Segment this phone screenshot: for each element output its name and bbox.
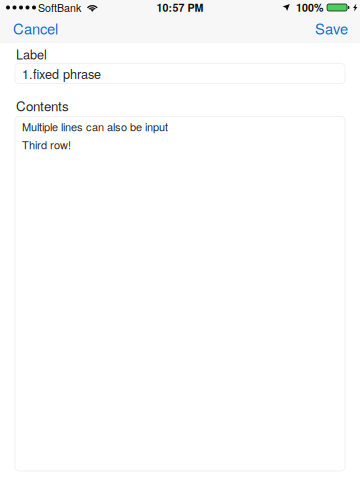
button[interactable]: 1.fixed phrase (15, 63, 345, 83)
staticText: Label (16, 45, 47, 63)
staticText: 1.fixed phrase (22, 64, 101, 82)
staticText: Multiple lines can also be input (22, 118, 168, 134)
staticText: Save (315, 18, 348, 39)
button[interactable]: Cancel (0, 19, 68, 42)
staticText: SoftBank (38, 0, 81, 15)
staticText: Contents (16, 96, 69, 115)
button[interactable]: Save (305, 19, 360, 42)
staticText: 100% (296, 0, 323, 15)
button[interactable]: Multiple lines can also be input (15, 116, 345, 471)
staticText: Cancel (13, 18, 58, 39)
staticText: 10:57 PM (156, 0, 203, 15)
staticText: Third row! (22, 136, 71, 152)
